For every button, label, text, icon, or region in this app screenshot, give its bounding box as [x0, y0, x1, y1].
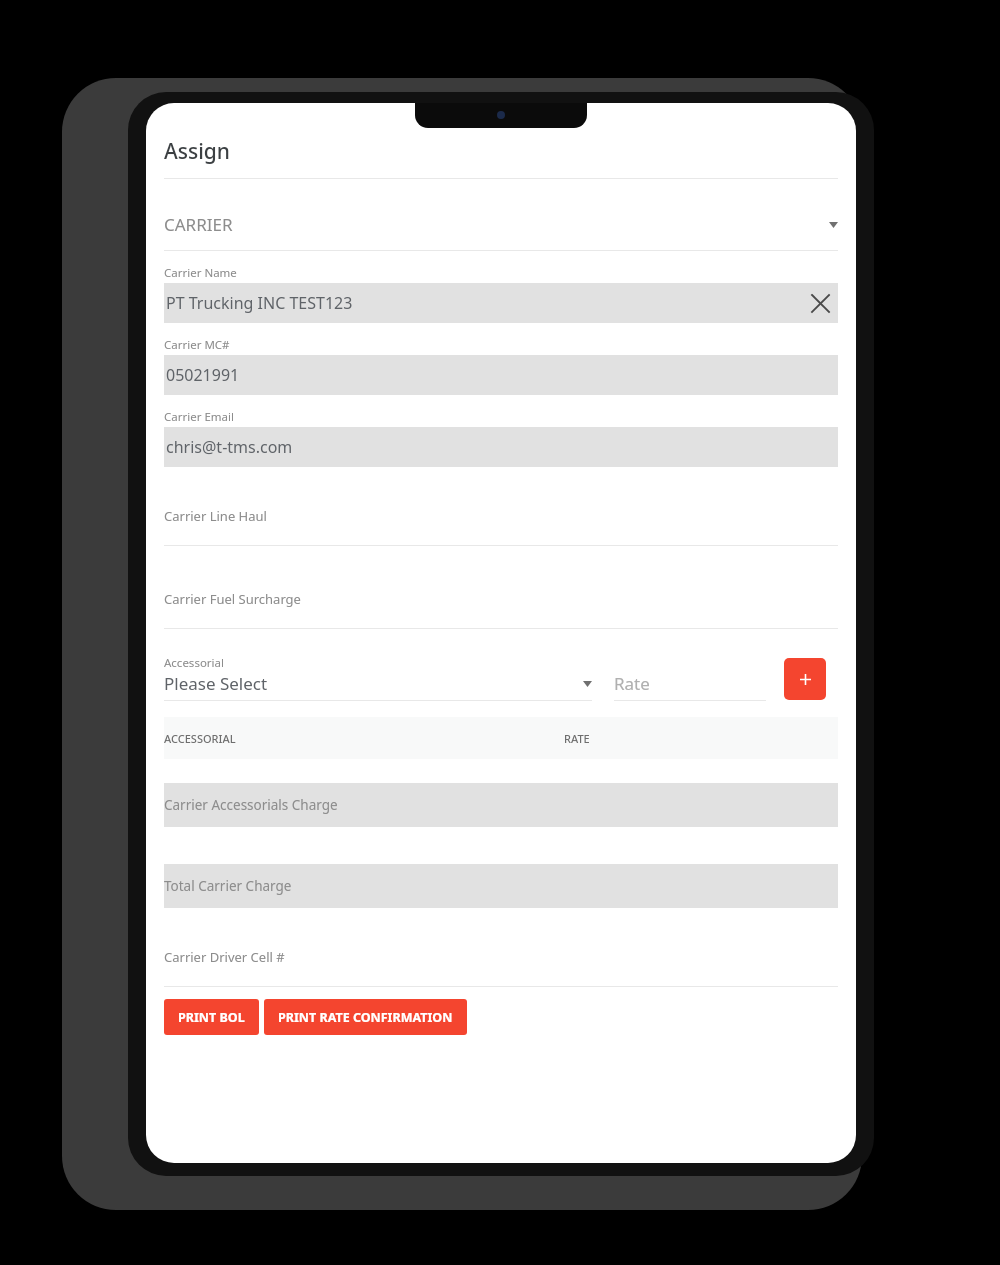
- button[interactable]: Carrier Accessorials Charge: [164, 783, 838, 827]
- staticText: Accessorial: [164, 655, 224, 671]
- staticText: PRINT BOL: [178, 1009, 245, 1026]
- staticText: Carrier Line Haul: [164, 507, 267, 525]
- staticText: Carrier MC#: [164, 337, 230, 353]
- staticText: Carrier Fuel Surcharge: [164, 590, 301, 608]
- staticText: RATE: [564, 731, 590, 746]
- staticText: ACCESSORIAL: [164, 731, 564, 746]
- staticText: CARRIER: [164, 213, 829, 236]
- button[interactable]: Rate: [614, 672, 766, 701]
- button[interactable]: Total Carrier Charge: [164, 864, 838, 908]
- staticText: chris@t-tms.com: [166, 436, 293, 458]
- button[interactable]: Clear carrier name: [804, 287, 836, 319]
- staticText: Please Select: [164, 672, 583, 695]
- button[interactable]: Assign: [164, 137, 231, 166]
- button[interactable]: ACCESSORIAL: [164, 717, 838, 759]
- button[interactable]: Carrier Line Haul: [164, 507, 838, 590]
- button[interactable]: PRINT BOL: [164, 999, 259, 1035]
- button[interactable]: PRINT RATE CONFIRMATION: [264, 999, 467, 1035]
- staticText: Carrier Driver Cell #: [164, 948, 285, 966]
- staticText: 05021991: [166, 364, 240, 386]
- button[interactable]: chris@t-tms.com: [164, 427, 838, 467]
- button[interactable]: Add accessorial: [784, 658, 826, 700]
- staticText: PRINT RATE CONFIRMATION: [278, 1009, 453, 1026]
- staticText: Total Carrier Charge: [164, 877, 292, 895]
- button[interactable]: PT Trucking INC TEST123: [164, 283, 838, 323]
- staticText: Carrier Email: [164, 409, 234, 425]
- staticText: Carrier Name: [164, 265, 237, 281]
- button[interactable]: CARRIER: [164, 213, 838, 236]
- staticText: PT Trucking INC TEST123: [166, 292, 353, 314]
- staticText: Carrier Accessorials Charge: [164, 796, 338, 814]
- button[interactable]: Carrier Fuel Surcharge: [164, 590, 838, 655]
- button[interactable]: Accessorial: [164, 655, 592, 701]
- button[interactable]: 05021991: [164, 355, 838, 395]
- staticText: Rate: [614, 672, 650, 695]
- button[interactable]: Carrier Driver Cell #: [164, 948, 838, 999]
